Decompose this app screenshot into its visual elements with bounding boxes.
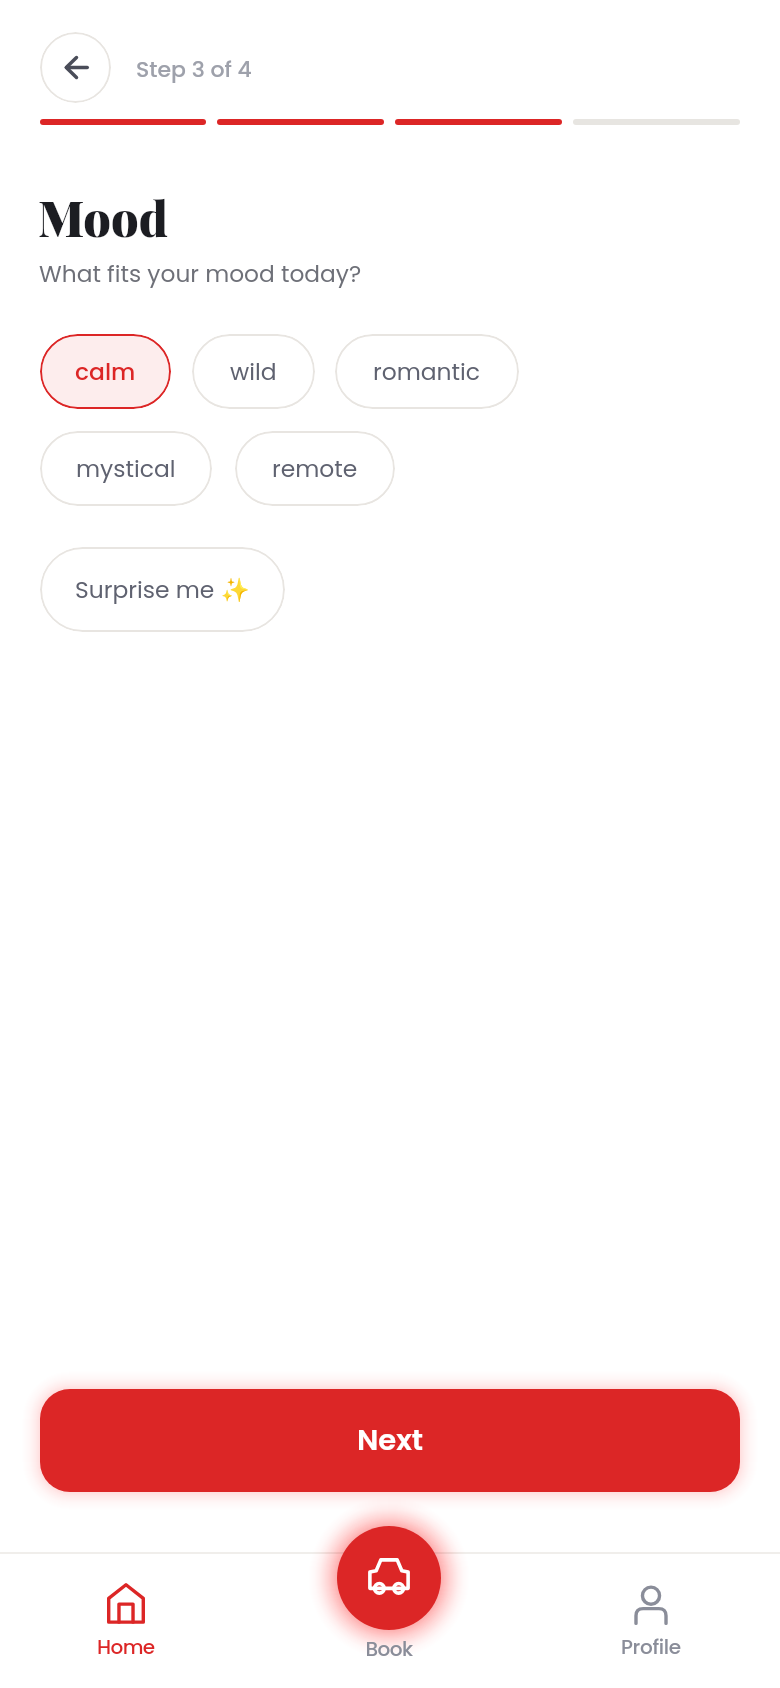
staticText: remote	[272, 452, 358, 485]
button[interactable]: Book	[337, 1526, 441, 1630]
staticText: Profile	[621, 1633, 681, 1661]
button[interactable]: Next	[40, 1389, 740, 1492]
button[interactable]: Profile	[571, 1583, 731, 1661]
staticText: Book	[309, 1635, 469, 1663]
button[interactable]: wild	[192, 334, 315, 409]
staticText: Surprise me ✨	[75, 573, 250, 606]
staticText: romantic	[373, 355, 481, 388]
button[interactable]: romantic	[335, 334, 519, 409]
staticText: Mood	[38, 185, 168, 249]
staticText: wild	[230, 355, 277, 388]
button[interactable]: Home	[46, 1583, 206, 1661]
staticText: Step 3 of 4	[136, 54, 252, 85]
staticText: calm	[75, 355, 136, 388]
staticText: What fits your mood today?	[39, 258, 362, 291]
staticText: Next	[357, 1420, 424, 1461]
button[interactable]: remote	[235, 431, 395, 506]
staticText: mystical	[76, 452, 176, 485]
staticText: Home	[97, 1633, 155, 1661]
button[interactable]: Surprise me ✨	[40, 547, 285, 632]
button[interactable]: Back	[40, 32, 111, 103]
button[interactable]: mystical	[40, 431, 212, 506]
button[interactable]: calm	[40, 334, 171, 409]
